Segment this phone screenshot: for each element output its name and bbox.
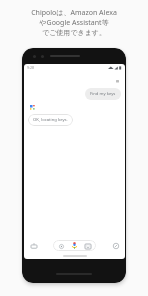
button[interactable]: Find my keys — [85, 88, 121, 100]
button[interactable]: OK, locating keys. — [28, 114, 73, 126]
button[interactable]: Explore — [111, 241, 120, 250]
staticText: Find my keys — [90, 91, 116, 97]
staticText: OK, locating keys. — [33, 117, 68, 123]
staticText: でご使用できます。 — [42, 28, 106, 37]
button[interactable]: Google Lens — [57, 242, 65, 250]
staticText: Chipoloは、Amazon Alexa — [31, 8, 117, 18]
button[interactable]: Keyboard — [29, 241, 38, 250]
button[interactable]: Voice search — [70, 241, 79, 250]
staticText: 9:28 — [27, 65, 34, 70]
button[interactable]: Keyboard input — [84, 242, 92, 250]
staticText: やGoogle Assistant等 — [39, 18, 109, 28]
